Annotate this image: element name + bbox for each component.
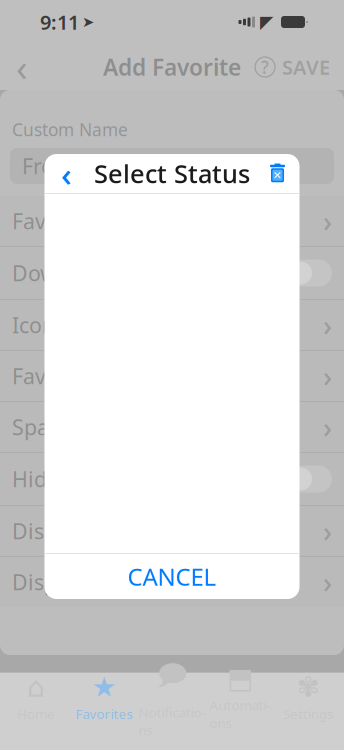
button[interactable]: Display Style bbox=[0, 505, 344, 556]
staticText: Display Style bbox=[12, 517, 141, 545]
staticText: ‹ bbox=[61, 151, 72, 196]
button[interactable]: Delete bbox=[255, 153, 299, 193]
button[interactable]: Favorite Color bbox=[0, 350, 344, 401]
staticText: ✾ bbox=[296, 671, 319, 703]
staticText: Hide Name bbox=[12, 465, 125, 493]
staticText: › bbox=[323, 306, 332, 344]
staticText: ⬒ bbox=[227, 662, 253, 694]
staticText: Icon bbox=[12, 311, 55, 339]
staticText: ⌂ bbox=[27, 671, 45, 703]
staticText: ? bbox=[261, 55, 269, 78]
staticText: Favorite Type bbox=[12, 207, 147, 235]
staticText: Favorites bbox=[75, 705, 132, 723]
staticText: ★ bbox=[91, 671, 116, 703]
staticText: › bbox=[323, 357, 332, 395]
staticText: 9:11 bbox=[40, 9, 79, 35]
staticText: Custom Name bbox=[12, 118, 128, 141]
staticText: Favorite Color bbox=[12, 362, 154, 390]
button[interactable]: Span bbox=[0, 401, 344, 452]
button[interactable]: CANCEL bbox=[44, 554, 299, 599]
staticText: CANCEL bbox=[127, 561, 216, 592]
staticText: › bbox=[323, 408, 332, 446]
button[interactable]: Hide Name bbox=[0, 452, 344, 505]
staticText: Download History bbox=[12, 259, 193, 287]
button[interactable]: Back bbox=[0, 45, 44, 89]
button[interactable]: Icon bbox=[0, 299, 344, 350]
staticText: ◤ bbox=[260, 12, 273, 32]
staticText: Span bbox=[12, 413, 62, 441]
button[interactable]: ✾ bbox=[274, 673, 342, 721]
button[interactable]: Display Order bbox=[0, 556, 344, 607]
staticText: 🗩 bbox=[156, 655, 187, 701]
staticText: Add Favorite bbox=[103, 52, 241, 82]
staticText: Front Door bbox=[22, 152, 132, 180]
button[interactable]: Back bbox=[44, 153, 88, 193]
button[interactable]: SAVE bbox=[282, 45, 344, 89]
button[interactable]: Download History bbox=[0, 246, 344, 299]
staticText: ‹ bbox=[16, 42, 28, 92]
button[interactable]: 🗩 bbox=[138, 673, 206, 721]
button[interactable]: ★ bbox=[70, 673, 138, 721]
staticText: › bbox=[323, 202, 332, 240]
staticText: Select Status bbox=[94, 157, 250, 190]
button[interactable]: Help bbox=[248, 45, 282, 89]
staticText: ✕ bbox=[273, 169, 282, 181]
staticText: Display Order bbox=[12, 568, 151, 596]
button[interactable]: ⬒ bbox=[206, 673, 274, 721]
staticText: › bbox=[323, 563, 332, 601]
button[interactable]: Favorite Type bbox=[0, 196, 344, 246]
staticText: › bbox=[323, 512, 332, 550]
staticText: ➤ bbox=[82, 14, 94, 30]
staticText: SAVE bbox=[282, 54, 330, 80]
